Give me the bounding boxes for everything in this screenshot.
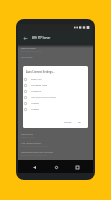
staticText: Select the WiFi Network to auto connect [21, 145, 50, 147]
staticText: WiFi FTP Server [21, 47, 36, 50]
button[interactable]: Back [28, 161, 40, 173]
staticText: Enable this to access a remote device [21, 154, 48, 156]
button[interactable]: Auto Connect Settings... [18, 141, 93, 150]
staticText: Disable app rotation [21, 136, 36, 138]
staticText: Android [31, 108, 39, 111]
button[interactable]: Recent apps [71, 161, 83, 173]
staticText: User Settings [21, 56, 33, 58]
staticText: The Media Store [31, 84, 47, 87]
staticText: Direct WiFi [31, 78, 42, 81]
button[interactable]: Android [23, 100, 88, 106]
button[interactable]: Home [50, 161, 62, 173]
button[interactable]: Direct WiFi [23, 76, 88, 82]
button[interactable]: Android IP [23, 88, 88, 94]
button[interactable]: Stay in Portal [18, 132, 93, 141]
button[interactable]: Android [23, 106, 88, 112]
button[interactable]: OK [77, 120, 82, 125]
button[interactable]: The Media Store [23, 82, 88, 88]
staticText: Auto Connect Settings... [21, 142, 43, 145]
staticText: WiFi FTP Server [32, 36, 51, 39]
button[interactable]: Make Remote Device Full FTP Server [18, 150, 93, 159]
button[interactable]: Back [18, 31, 32, 45]
staticText: Auto Connect Settings... [26, 70, 55, 73]
button[interactable]: CANCEL [63, 120, 73, 125]
staticText: Toggle to Start WiFi FTP Server [21, 50, 43, 52]
staticText: CANCEL [64, 121, 72, 124]
staticText: Android [31, 102, 39, 105]
staticText: Android IP [31, 90, 42, 93]
staticText: OK [78, 121, 81, 124]
staticText: AOT/77(U+2C/C*U+4DC4) [31, 96, 56, 99]
staticText: Make Remote Device Full FTP Server [21, 151, 54, 154]
button[interactable]: AOT/77(U+2C/C*U+4DC4) [23, 94, 88, 100]
staticText: Stay in Portal [21, 133, 33, 136]
